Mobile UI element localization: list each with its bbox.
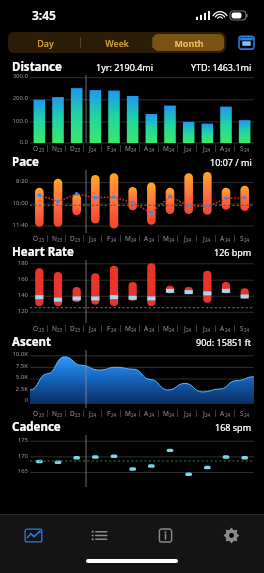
staticText: 5.0K — [15, 373, 28, 381]
staticText: 24 — [169, 147, 175, 153]
staticText: 23 — [75, 237, 81, 243]
staticText: 11:40 — [12, 221, 28, 229]
staticText: 165 — [17, 467, 28, 475]
staticText: 24 — [149, 327, 155, 333]
button[interactable]: Info — [132, 515, 198, 555]
staticText: M — [125, 324, 131, 333]
staticText: F — [107, 409, 111, 418]
staticText: M — [125, 409, 131, 418]
staticText: 8:20 — [16, 177, 28, 185]
staticText: 24 — [149, 147, 155, 153]
staticText: Ascent — [12, 334, 51, 350]
staticText: S — [240, 409, 244, 418]
staticText: 10:00 — [12, 199, 28, 207]
staticText: A — [144, 409, 149, 418]
staticText: 24 — [111, 237, 117, 243]
staticText: 180 — [17, 259, 28, 267]
staticText: 3:45 — [32, 7, 56, 23]
staticText: J — [89, 409, 91, 418]
staticText: 24 — [205, 327, 211, 333]
staticText: 24 — [149, 412, 155, 418]
staticText: M — [163, 324, 169, 333]
staticText: 23 — [75, 147, 81, 153]
staticText: D — [70, 409, 75, 418]
staticText: J — [184, 324, 186, 333]
staticText: F — [107, 324, 111, 333]
staticText: M — [163, 409, 169, 418]
staticText: 100.0 — [12, 117, 28, 125]
staticText: 23 — [39, 237, 45, 243]
staticText: A — [220, 409, 225, 418]
staticText: 23 — [39, 147, 45, 153]
staticText: YTD: 1463.1mi — [191, 61, 252, 73]
staticText: 23 — [57, 327, 63, 333]
staticText: 24 — [205, 147, 211, 153]
staticText: 24 — [225, 147, 231, 153]
button[interactable]: Charts — [0, 515, 66, 555]
staticText: 24 — [225, 237, 231, 243]
staticText: J — [184, 144, 186, 153]
staticText: N — [52, 234, 57, 243]
staticText: D — [70, 324, 75, 333]
staticText: J — [203, 144, 205, 153]
staticText: 23 — [57, 237, 63, 243]
staticText: F — [107, 234, 111, 243]
button[interactable]: List — [66, 515, 132, 555]
button[interactable]: Month — [153, 34, 224, 51]
staticText: J — [89, 144, 91, 153]
staticText: Heart Rate — [12, 244, 74, 260]
staticText: 126 bpm — [214, 246, 252, 258]
button[interactable]: Settings — [198, 515, 264, 555]
button[interactable]: Select date — [236, 32, 256, 52]
staticText: A — [144, 324, 149, 333]
staticText: 24 — [169, 237, 175, 243]
staticText: 24 — [186, 147, 192, 153]
button[interactable]: Day — [10, 34, 80, 51]
staticText: 90d: 15851 ft — [196, 336, 252, 348]
staticText: 24 — [244, 327, 250, 333]
staticText: Pace — [12, 154, 39, 170]
staticText: J — [89, 324, 91, 333]
staticText: D — [70, 234, 75, 243]
staticText: 23 — [39, 327, 45, 333]
staticText: Month — [174, 37, 204, 49]
staticText: 24 — [169, 412, 175, 418]
staticText: 24 — [225, 412, 231, 418]
staticText: 23 — [75, 412, 81, 418]
staticText: J — [184, 234, 186, 243]
staticText: 24 — [91, 412, 97, 418]
button[interactable]: Week — [81, 34, 152, 51]
staticText: J — [203, 324, 205, 333]
staticText: 24 — [91, 327, 97, 333]
staticText: 0 — [24, 396, 28, 404]
staticText: A — [144, 144, 149, 153]
staticText: 23 — [39, 412, 45, 418]
staticText: Distance — [12, 59, 62, 75]
staticText: O — [33, 409, 39, 418]
staticText: 24 — [131, 237, 137, 243]
staticText: 24 — [225, 327, 231, 333]
staticText: 24 — [131, 147, 137, 153]
staticText: 2.5K — [15, 385, 28, 393]
staticText: O — [33, 324, 39, 333]
staticText: 24 — [131, 412, 137, 418]
staticText: M — [125, 234, 131, 243]
staticText: 24 — [111, 147, 117, 153]
staticText: D — [70, 144, 75, 153]
staticText: 10:07 / mi — [210, 156, 252, 168]
staticText: Cadence — [12, 419, 61, 435]
staticText: A — [220, 234, 225, 243]
staticText: 24 — [111, 327, 117, 333]
staticText: 1yr: 2190.4mi — [96, 61, 154, 73]
staticText: 24 — [169, 327, 175, 333]
staticText: 24 — [244, 412, 250, 418]
staticText: J — [184, 409, 186, 418]
staticText: 24 — [111, 412, 117, 418]
staticText: N — [52, 324, 57, 333]
staticText: 175 — [17, 436, 28, 444]
staticText: Day — [37, 37, 54, 49]
staticText: J — [203, 409, 205, 418]
staticText: 24 — [244, 147, 250, 153]
staticText: 120 — [17, 307, 28, 315]
staticText: 24 — [186, 412, 192, 418]
